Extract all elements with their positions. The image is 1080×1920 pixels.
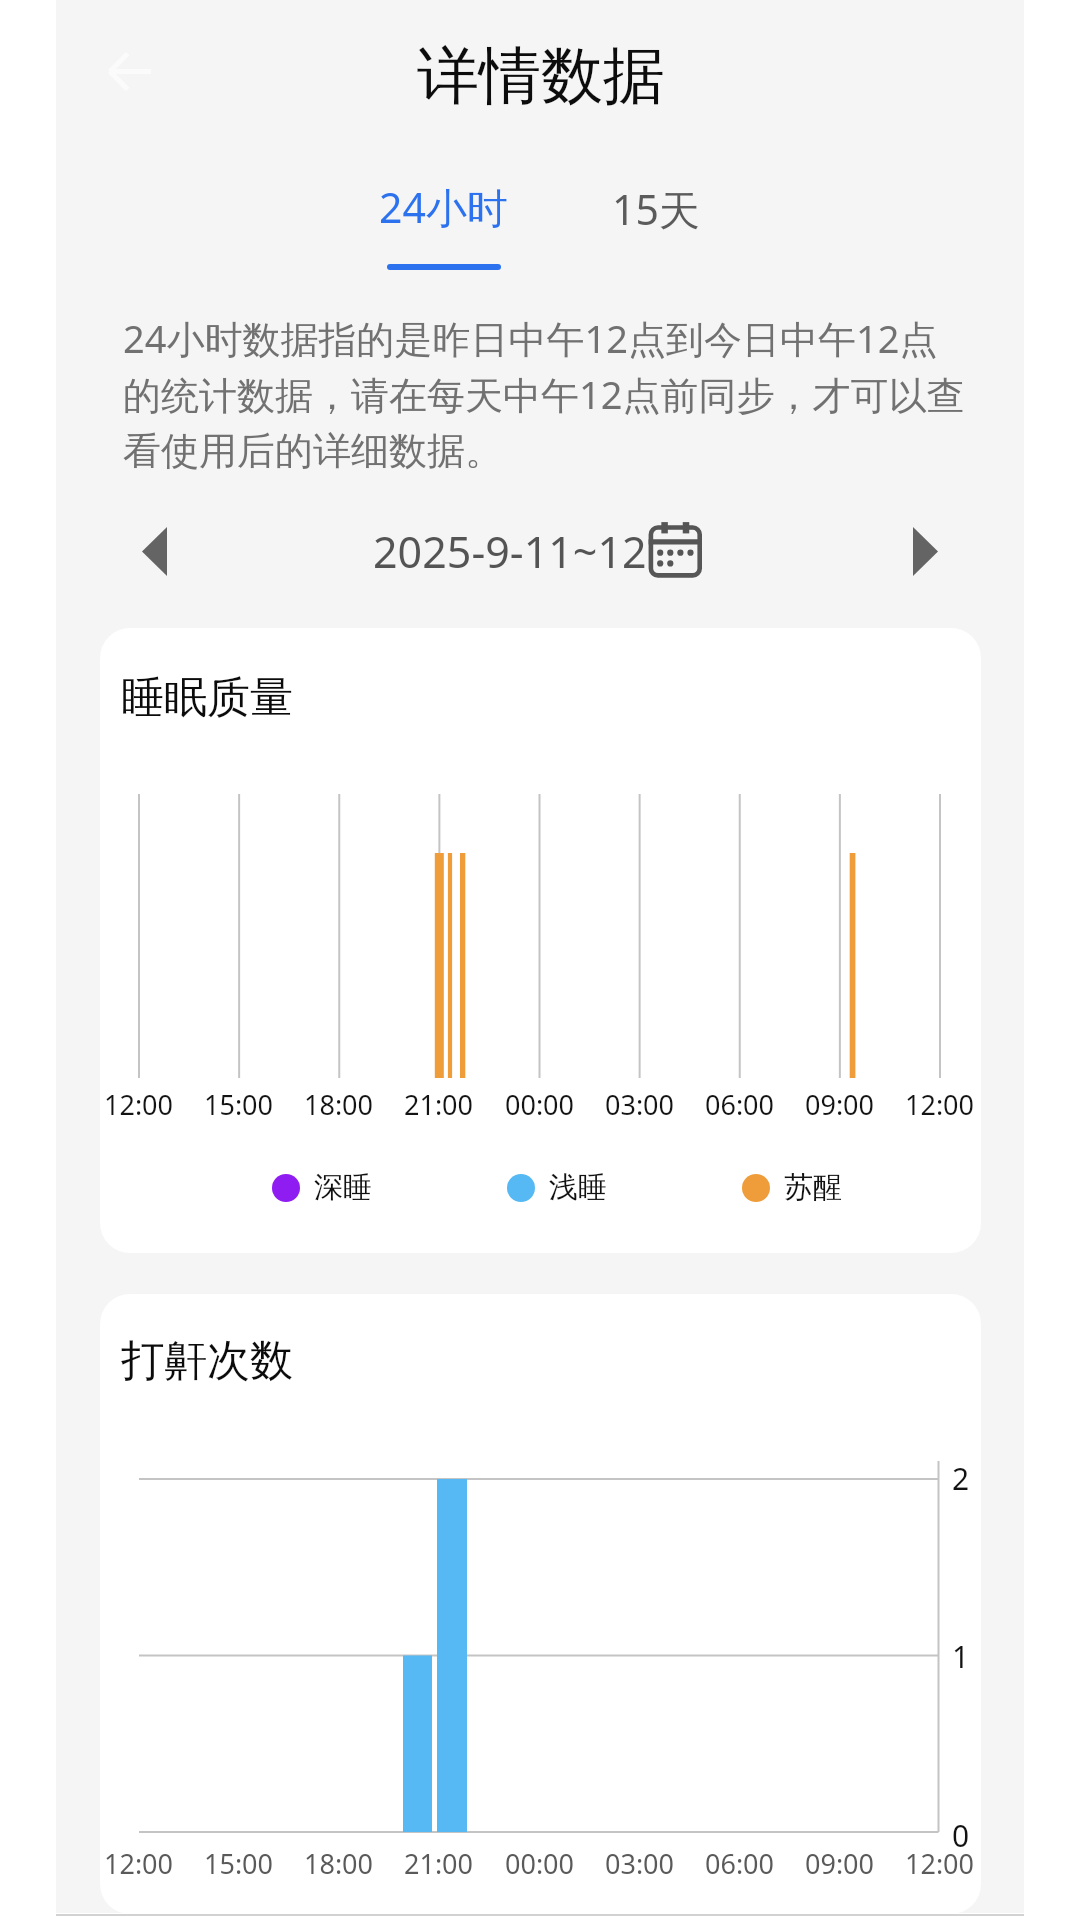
staticText: 00:00 (505, 1845, 575, 1882)
button[interactable]: Next day (892, 518, 958, 584)
staticText: 苏醒 (784, 1169, 842, 1206)
button[interactable]: 24小时 (357, 160, 527, 290)
staticText: 18:00 (304, 1845, 374, 1882)
staticText: 00:00 (505, 1086, 575, 1123)
staticText: 12:00 (104, 1845, 174, 1882)
staticText: 06:00 (705, 1845, 775, 1882)
button[interactable]: Previous day (121, 518, 187, 584)
staticText: 21:00 (404, 1086, 474, 1123)
staticText: 深睡 (314, 1169, 372, 1206)
staticText: 12:00 (905, 1086, 975, 1123)
staticText: 打鼾次数 (121, 1334, 293, 1388)
staticText: 09:00 (805, 1845, 875, 1882)
button[interactable]: Pick date (644, 516, 706, 578)
staticText: 15天 (612, 181, 700, 237)
staticText: 21:00 (404, 1845, 474, 1882)
staticText: 睡眠质量 (121, 671, 293, 725)
staticText: 12:00 (905, 1845, 975, 1882)
staticText: 2 (952, 1458, 970, 1499)
staticText: 12:00 (104, 1086, 174, 1123)
staticText: 0 (952, 1815, 970, 1856)
staticText: 详情数据 (417, 37, 665, 115)
staticText: 18:00 (304, 1086, 374, 1123)
staticText: 09:00 (805, 1086, 875, 1123)
staticText: 24小时数据指的是昨日中午12点到今日中午12点的统计数据，请在每天中午12点前… (123, 312, 968, 475)
staticText: 03:00 (605, 1086, 675, 1123)
staticText: 03:00 (605, 1845, 675, 1882)
staticText: 2025-9-11~12 (373, 522, 647, 581)
staticText: 15:00 (204, 1086, 274, 1123)
staticText: 浅睡 (549, 1169, 607, 1206)
staticText: 24小时 (379, 179, 508, 235)
staticText: 15:00 (204, 1845, 274, 1882)
staticText: 06:00 (705, 1086, 775, 1123)
staticText: 1 (952, 1636, 970, 1677)
button[interactable]: 15天 (568, 160, 738, 290)
